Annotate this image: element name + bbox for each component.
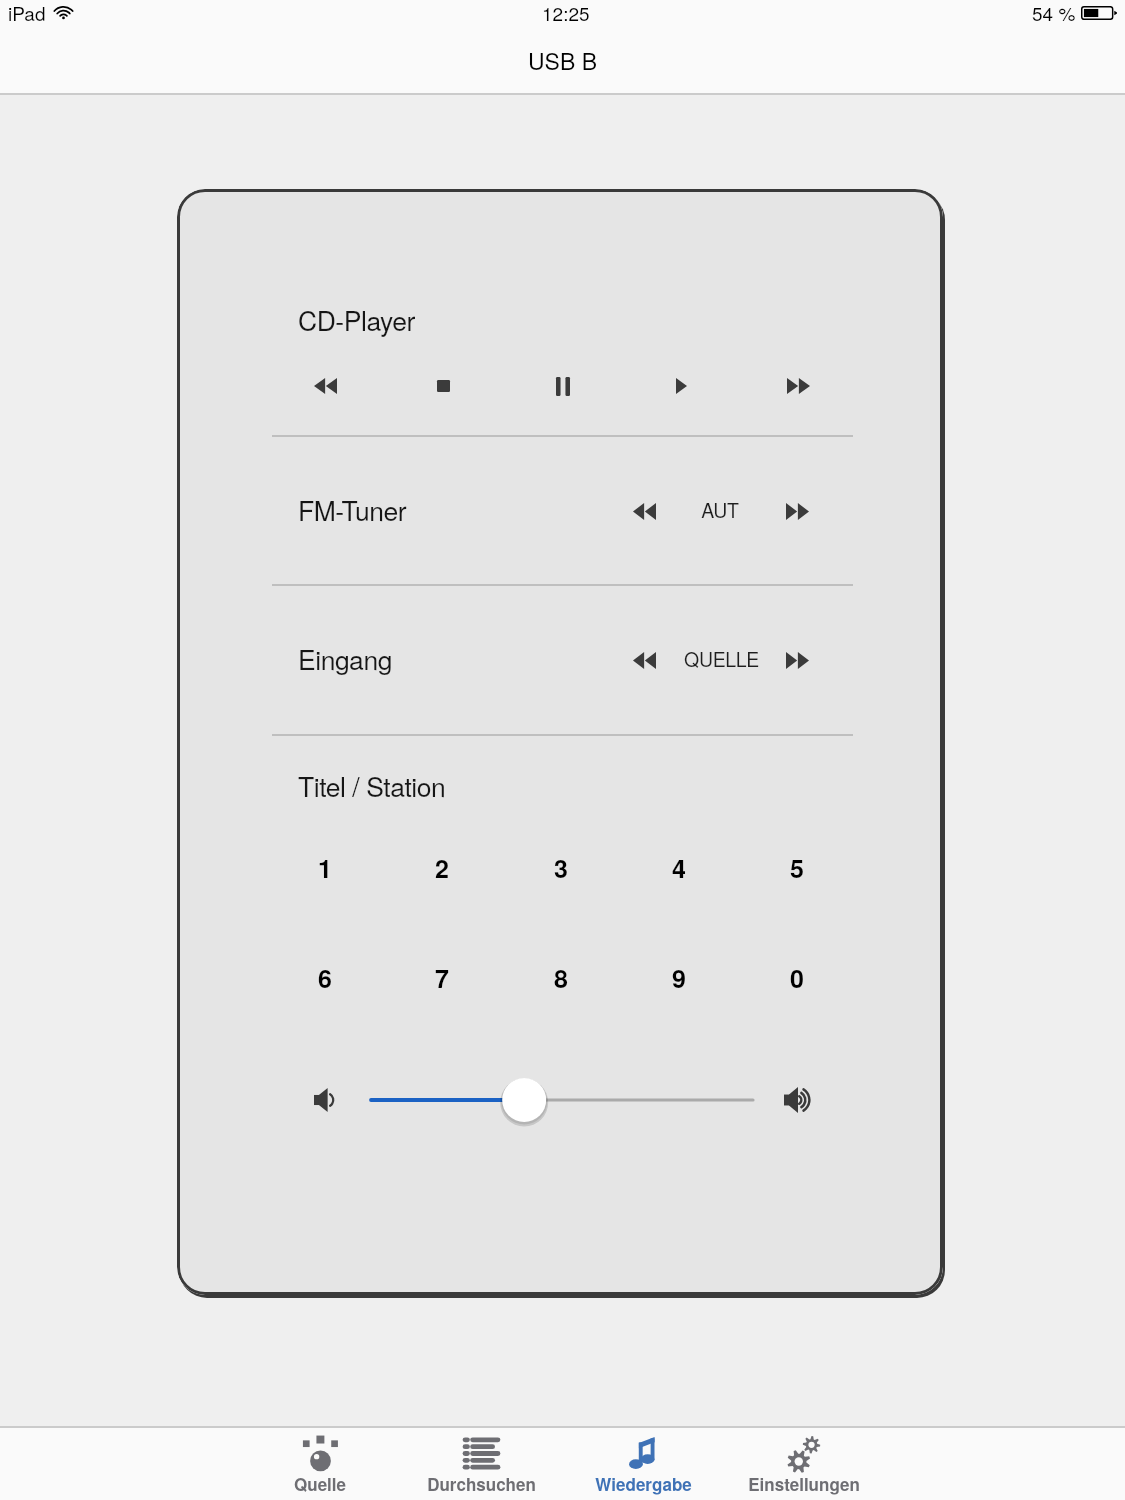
button[interactable]: Volume up <box>771 1073 825 1127</box>
button[interactable]: 8 <box>534 951 588 1005</box>
button[interactable]: Stop <box>416 359 470 413</box>
button[interactable]: AUT <box>655 484 785 536</box>
staticText: 3 <box>554 850 568 886</box>
staticText: 0 <box>790 960 804 996</box>
button[interactable]: Wiedergabe <box>553 1431 733 1499</box>
button[interactable]: Quelle <box>230 1431 410 1499</box>
staticText: iPad <box>8 0 46 26</box>
button[interactable]: Volume <box>371 1074 753 1126</box>
staticText: FM-Tuner <box>298 491 407 529</box>
button[interactable]: Einstellungen <box>714 1431 894 1499</box>
staticText: 6 <box>318 960 332 996</box>
button[interactable]: Rewind <box>298 359 352 413</box>
staticText: CD-Player <box>298 301 415 339</box>
button[interactable]: 3 <box>534 841 588 895</box>
staticText: 5 <box>790 850 804 886</box>
staticText: Eingang <box>298 640 392 678</box>
staticText: 4 <box>672 850 686 886</box>
button[interactable]: QUELLE <box>656 633 786 685</box>
staticText: Durchsuchen <box>427 1472 536 1496</box>
staticText: Wiedergabe <box>595 1472 692 1496</box>
staticText: 8 <box>554 960 568 996</box>
button[interactable]: Fast forward <box>771 359 825 413</box>
button[interactable]: 6 <box>298 951 352 1005</box>
staticText: USB B <box>0 44 1125 77</box>
button[interactable]: 7 <box>415 951 469 1005</box>
staticText: 12:25 <box>542 0 590 26</box>
button[interactable]: Volume down <box>298 1073 352 1127</box>
button[interactable]: 2 <box>415 841 469 895</box>
button[interactable]: Next station <box>770 484 824 538</box>
staticText: QUELLE <box>684 645 759 673</box>
button[interactable]: 4 <box>652 841 706 895</box>
button[interactable]: Previous input <box>617 633 671 687</box>
button[interactable]: Durchsuchen <box>391 1431 571 1499</box>
staticText: Einstellungen <box>748 1472 860 1496</box>
button[interactable]: Pause <box>536 359 590 413</box>
staticText: 7 <box>435 960 449 996</box>
staticText: Quelle <box>294 1472 346 1496</box>
staticText: 2 <box>435 850 449 886</box>
button[interactable]: Next input <box>770 633 824 687</box>
staticText: 1 <box>318 850 332 886</box>
staticText: Titel / Station <box>298 767 446 805</box>
button[interactable]: 5 <box>770 841 824 895</box>
button[interactable]: Play <box>654 359 708 413</box>
button[interactable]: 0 <box>770 951 824 1005</box>
staticText: AUT <box>701 496 739 524</box>
button[interactable]: 1 <box>298 841 352 895</box>
button[interactable]: Previous station <box>617 484 671 538</box>
staticText: 54 % <box>1032 0 1076 26</box>
button[interactable]: 9 <box>652 951 706 1005</box>
staticText: 9 <box>672 960 686 996</box>
